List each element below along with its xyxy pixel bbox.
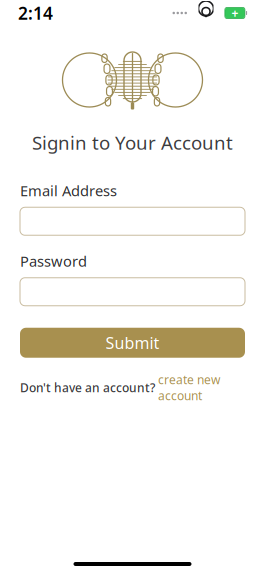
staticText: Submit [105,332,159,353]
staticText: Email Address [20,181,117,200]
staticText: Don't have an account? [20,380,155,396]
staticText: 2:14 [18,1,53,24]
staticText: + [231,5,238,21]
button[interactable]: create new account [158,372,220,404]
staticText: Signin to Your Account [32,130,233,155]
staticText: create new account [158,372,220,404]
button[interactable]: Submit [20,328,245,358]
staticText: Password [20,251,87,271]
